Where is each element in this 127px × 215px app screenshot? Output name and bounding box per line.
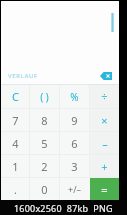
button[interactable]: Backspace bbox=[99, 70, 113, 82]
staticText: – bbox=[102, 136, 108, 151]
button[interactable]: – bbox=[90, 132, 119, 154]
button[interactable]: = bbox=[90, 178, 119, 200]
button[interactable]: 0 bbox=[30, 178, 59, 200]
button[interactable]: 9 bbox=[60, 109, 89, 131]
staticText: VERLAUF bbox=[8, 72, 38, 80]
staticText: 6 bbox=[71, 136, 78, 151]
button[interactable]: 5 bbox=[30, 132, 59, 154]
staticText: 3 bbox=[71, 159, 78, 174]
button[interactable]: 4 bbox=[1, 132, 29, 154]
button[interactable]: ÷ bbox=[90, 85, 119, 108]
button[interactable]: + bbox=[90, 155, 119, 177]
button[interactable]: 8 bbox=[30, 109, 59, 131]
staticText: 4 bbox=[12, 136, 19, 151]
button[interactable]: C bbox=[1, 85, 29, 108]
staticText: +/– bbox=[68, 183, 81, 195]
staticText: C bbox=[12, 89, 19, 104]
button[interactable]: +/– bbox=[60, 178, 89, 200]
staticText: % bbox=[70, 90, 79, 104]
staticText: ÷ bbox=[101, 89, 108, 104]
button[interactable]: VERLAUF bbox=[8, 72, 38, 80]
button[interactable]: . bbox=[1, 178, 29, 200]
staticText: 8 bbox=[41, 113, 48, 128]
staticText: . bbox=[14, 182, 17, 197]
staticText: 5 bbox=[41, 136, 48, 151]
staticText: 1 bbox=[12, 159, 19, 174]
staticText: 2 bbox=[41, 159, 48, 174]
button[interactable]: 6 bbox=[60, 132, 89, 154]
staticText: = bbox=[101, 182, 108, 197]
button[interactable]: 3 bbox=[60, 155, 89, 177]
staticText: ( ) bbox=[40, 90, 49, 104]
button[interactable]: 2 bbox=[30, 155, 59, 177]
staticText: 0 bbox=[41, 182, 48, 197]
button[interactable]: × bbox=[90, 109, 119, 131]
button[interactable]: ( ) bbox=[30, 85, 59, 108]
button[interactable]: % bbox=[60, 85, 89, 108]
staticText: 1600x2560 87kb PNG bbox=[14, 202, 113, 214]
button[interactable]: 7 bbox=[1, 109, 29, 131]
button[interactable]: 1 bbox=[1, 155, 29, 177]
staticText: × bbox=[101, 113, 108, 128]
staticText: 7 bbox=[12, 113, 19, 128]
staticText: + bbox=[101, 159, 108, 174]
staticText: 9 bbox=[71, 113, 78, 128]
